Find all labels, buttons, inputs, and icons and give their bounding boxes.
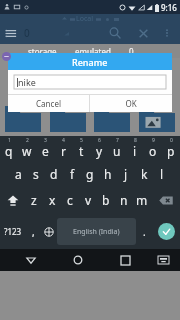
button[interactable]: k [135, 161, 153, 186]
button[interactable]: 0 [129, 46, 134, 57]
button[interactable]: OK [90, 95, 172, 112]
staticText: w [22, 143, 32, 159]
staticText: o [149, 143, 157, 159]
staticText: m [136, 192, 148, 208]
staticText: x [49, 192, 56, 208]
button[interactable]: . [136, 214, 152, 249]
button[interactable]: storage [28, 46, 57, 57]
staticText: k [141, 166, 148, 182]
staticText: g [86, 166, 94, 182]
staticText: 9 [152, 137, 155, 144]
staticText: f [70, 166, 75, 182]
staticText: r [61, 143, 66, 159]
staticText: d [50, 166, 58, 182]
staticText: 7 [116, 137, 119, 144]
button[interactable]: nike [14, 75, 166, 89]
staticText: n [120, 192, 128, 208]
button[interactable] [50, 106, 86, 132]
staticText: v [85, 192, 92, 208]
button[interactable]: z [25, 186, 43, 214]
button[interactable]: m [133, 186, 151, 214]
staticText: 4 [62, 137, 65, 144]
staticText: 0 [170, 137, 173, 144]
button[interactable]: h [99, 161, 117, 186]
staticText: 0 [24, 26, 30, 40]
button[interactable]: b [97, 186, 115, 214]
staticText: 3 [44, 137, 47, 144]
button[interactable]: s [27, 161, 45, 186]
staticText: s [33, 166, 39, 182]
button[interactable]: Enter [158, 223, 175, 240]
staticText: . [143, 225, 146, 239]
staticText: 6 [98, 137, 101, 144]
staticText: Cancel [36, 98, 61, 109]
button[interactable]: x [43, 186, 61, 214]
staticText: i [133, 143, 137, 159]
button[interactable]: 9 [144, 136, 162, 161]
staticText: 9:16 [161, 2, 177, 13]
button[interactable]: l [153, 161, 171, 186]
button[interactable]: Menu [0, 22, 22, 44]
staticText: English (India) [73, 227, 120, 237]
staticText: , [32, 225, 35, 239]
staticText: Rename [72, 56, 108, 68]
button[interactable]: 6 [90, 136, 108, 161]
button[interactable]: 5 [72, 136, 90, 161]
button[interactable]: Change language [41, 214, 57, 249]
staticText: 1 [8, 137, 11, 144]
button[interactable]: Back [20, 249, 42, 271]
staticText: h [104, 166, 112, 182]
staticText: t [79, 143, 84, 159]
staticText: u [113, 143, 121, 159]
staticText: a [15, 166, 22, 182]
staticText: j [124, 166, 128, 182]
button[interactable] [139, 106, 175, 132]
button[interactable]: c [61, 186, 79, 214]
button[interactable]: 0 [162, 136, 180, 161]
button[interactable]: f [63, 161, 81, 186]
button[interactable]: ?123 [0, 214, 25, 249]
staticText: c [67, 192, 73, 208]
staticText: z [31, 192, 37, 208]
button[interactable]: , [25, 214, 41, 249]
staticText: l [160, 166, 164, 182]
button[interactable]: 2 [18, 136, 36, 161]
button[interactable]: n [115, 186, 133, 214]
button[interactable]: Shift [0, 186, 25, 214]
button[interactable]: Backspace [151, 186, 180, 214]
staticText: Local [76, 14, 93, 24]
staticText: y [96, 143, 103, 159]
staticText: 8 [134, 137, 137, 144]
button[interactable]: 8 [126, 136, 144, 161]
button[interactable]: v [79, 186, 97, 214]
staticText: 5 [80, 137, 83, 144]
button[interactable]: g [81, 161, 99, 186]
staticText: q [5, 143, 13, 159]
button[interactable]: 4 [54, 136, 72, 161]
button[interactable]: d [45, 161, 63, 186]
button[interactable]: a [9, 161, 27, 186]
button[interactable]: Home [67, 249, 89, 271]
button[interactable]: More options [157, 23, 177, 43]
staticText: b [102, 192, 110, 208]
button[interactable] [5, 106, 41, 132]
button[interactable]: emulated [75, 46, 111, 57]
staticText: nike [18, 76, 36, 88]
button[interactable]: Recents [114, 249, 136, 271]
button[interactable]: 1 [0, 136, 18, 161]
button[interactable]: 3 [36, 136, 54, 161]
staticText: OK [125, 98, 137, 109]
button[interactable]: Search [103, 22, 127, 44]
button[interactable]: Cancel [8, 95, 89, 112]
staticText: ?123 [4, 226, 22, 237]
button[interactable] [94, 106, 130, 132]
button[interactable]: Close [131, 22, 155, 44]
button[interactable]: j [117, 161, 135, 186]
staticText: 2 [26, 137, 29, 144]
staticText: p [167, 143, 175, 159]
button[interactable]: Hide keyboard [153, 250, 173, 270]
button[interactable]: English (India) [57, 218, 136, 245]
button[interactable]: 7 [108, 136, 126, 161]
staticText: e [42, 143, 49, 159]
